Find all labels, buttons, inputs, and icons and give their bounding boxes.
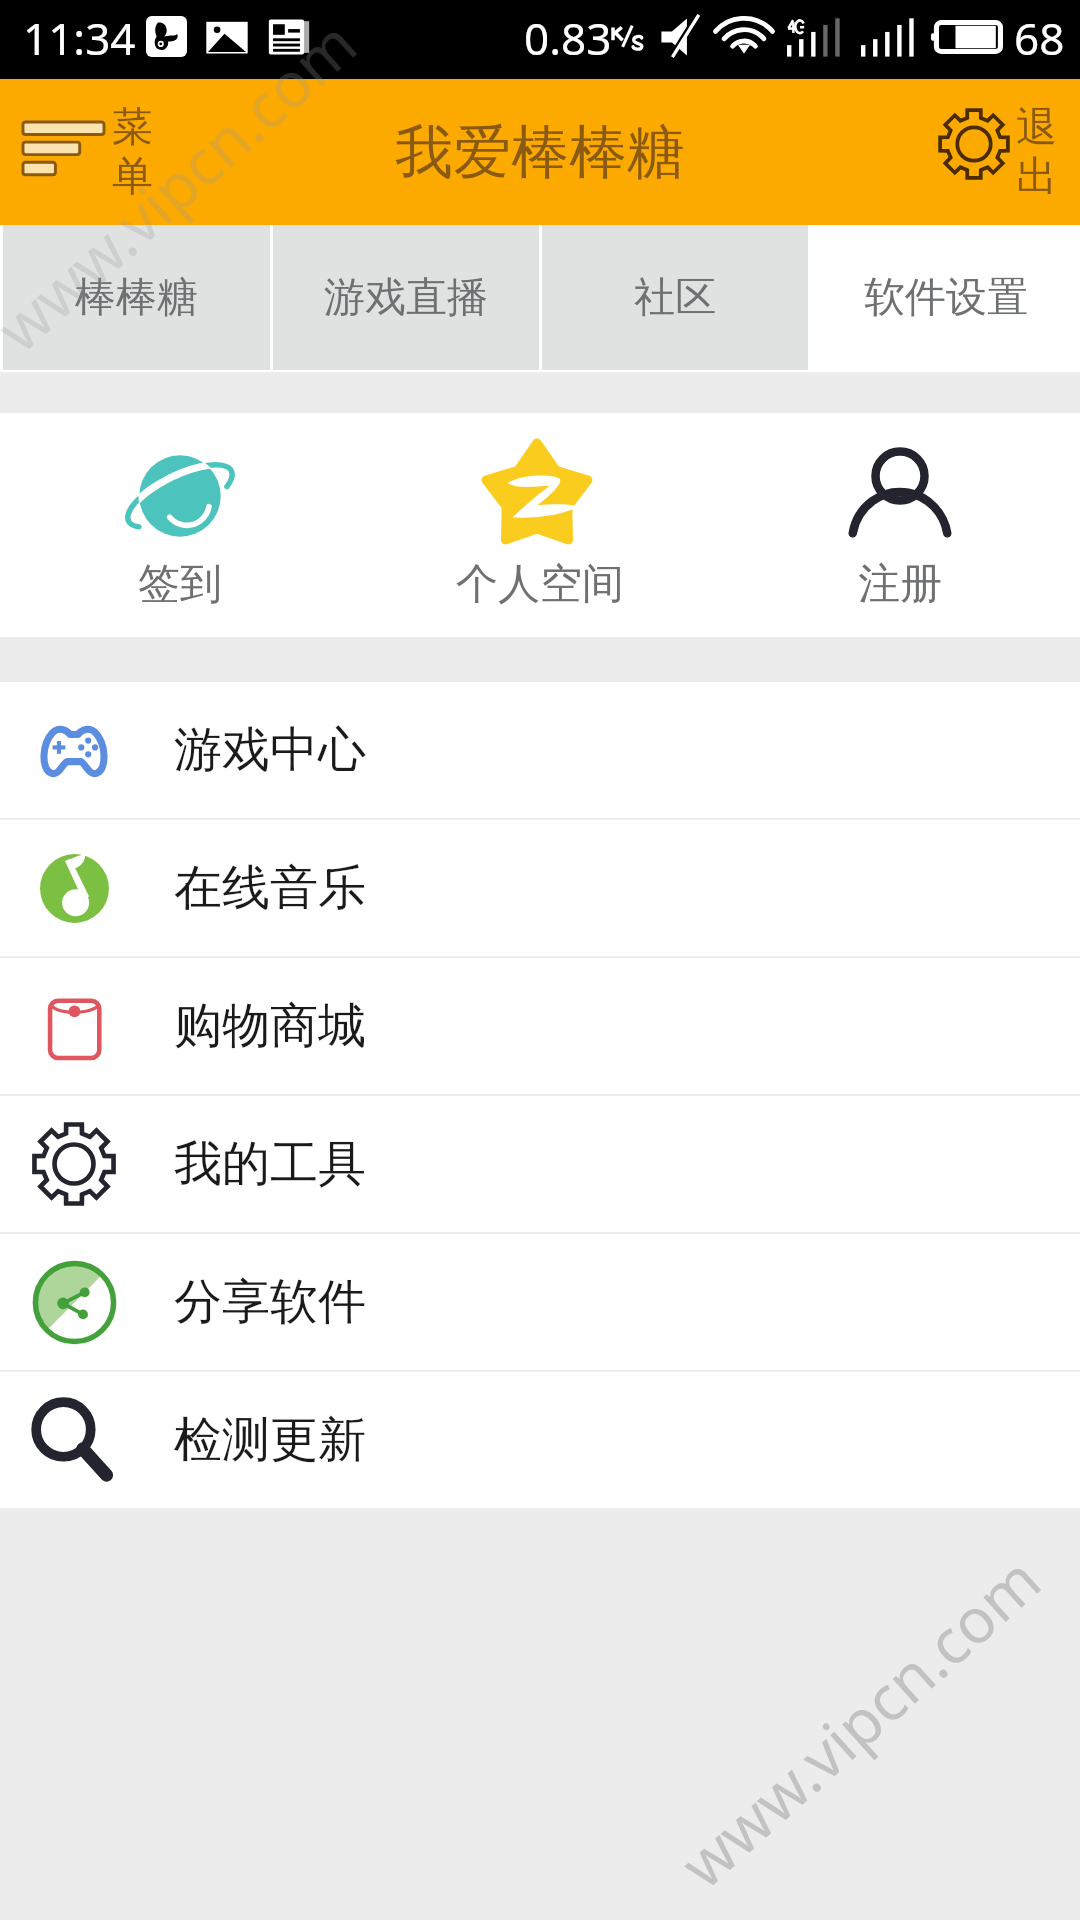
button[interactable]: 社区 xyxy=(542,225,808,370)
button[interactable]: 购物商城 xyxy=(0,958,1080,1094)
staticText: www.vipcn.com xyxy=(0,2,373,369)
button[interactable]: 个人空间 xyxy=(360,413,720,637)
staticText: 游戏直播 xyxy=(324,272,488,324)
staticText: 菜 单 xyxy=(112,102,153,202)
staticText: 退 出 xyxy=(1016,102,1057,202)
staticText: 注册 xyxy=(858,558,942,611)
button[interactable]: 菜单 xyxy=(0,79,1080,225)
staticText: 11:34 xyxy=(23,8,136,68)
button[interactable]: 注册 xyxy=(720,413,1080,637)
button[interactable]: 棒棒糖 xyxy=(3,225,270,370)
button[interactable]: 分享软件 xyxy=(0,1234,1080,1370)
button[interactable]: 我的工具 xyxy=(0,1096,1080,1232)
button[interactable]: 软件设置 xyxy=(811,225,1080,370)
staticText: 签到 xyxy=(138,558,222,611)
staticText: 检测更新 xyxy=(174,1410,366,1470)
staticText: 个人空间 xyxy=(456,558,624,611)
staticText: 0.83 xyxy=(524,8,612,68)
staticText: 社区 xyxy=(634,272,716,324)
staticText: 游戏中心 xyxy=(174,720,366,780)
button[interactable]: 退出 xyxy=(0,79,1080,225)
staticText: 分享软件 xyxy=(174,1272,366,1332)
staticText: 我的工具 xyxy=(174,1134,366,1194)
button[interactable]: 在线音乐 xyxy=(0,820,1080,956)
button[interactable]: 检测更新 xyxy=(0,1372,1080,1508)
staticText: 68 xyxy=(1014,8,1065,68)
staticText: 棒棒糖 xyxy=(75,272,198,324)
button[interactable]: 游戏中心 xyxy=(0,682,1080,818)
button[interactable]: 游戏直播 xyxy=(273,225,539,370)
staticText: 软件设置 xyxy=(864,272,1028,324)
staticText: 我爱棒棒糖 xyxy=(395,116,685,189)
staticText: www.vipcn.com xyxy=(662,1538,1057,1905)
staticText: 购物商城 xyxy=(174,996,366,1056)
staticText: 在线音乐 xyxy=(174,858,366,918)
button[interactable]: 签到 xyxy=(0,413,360,637)
